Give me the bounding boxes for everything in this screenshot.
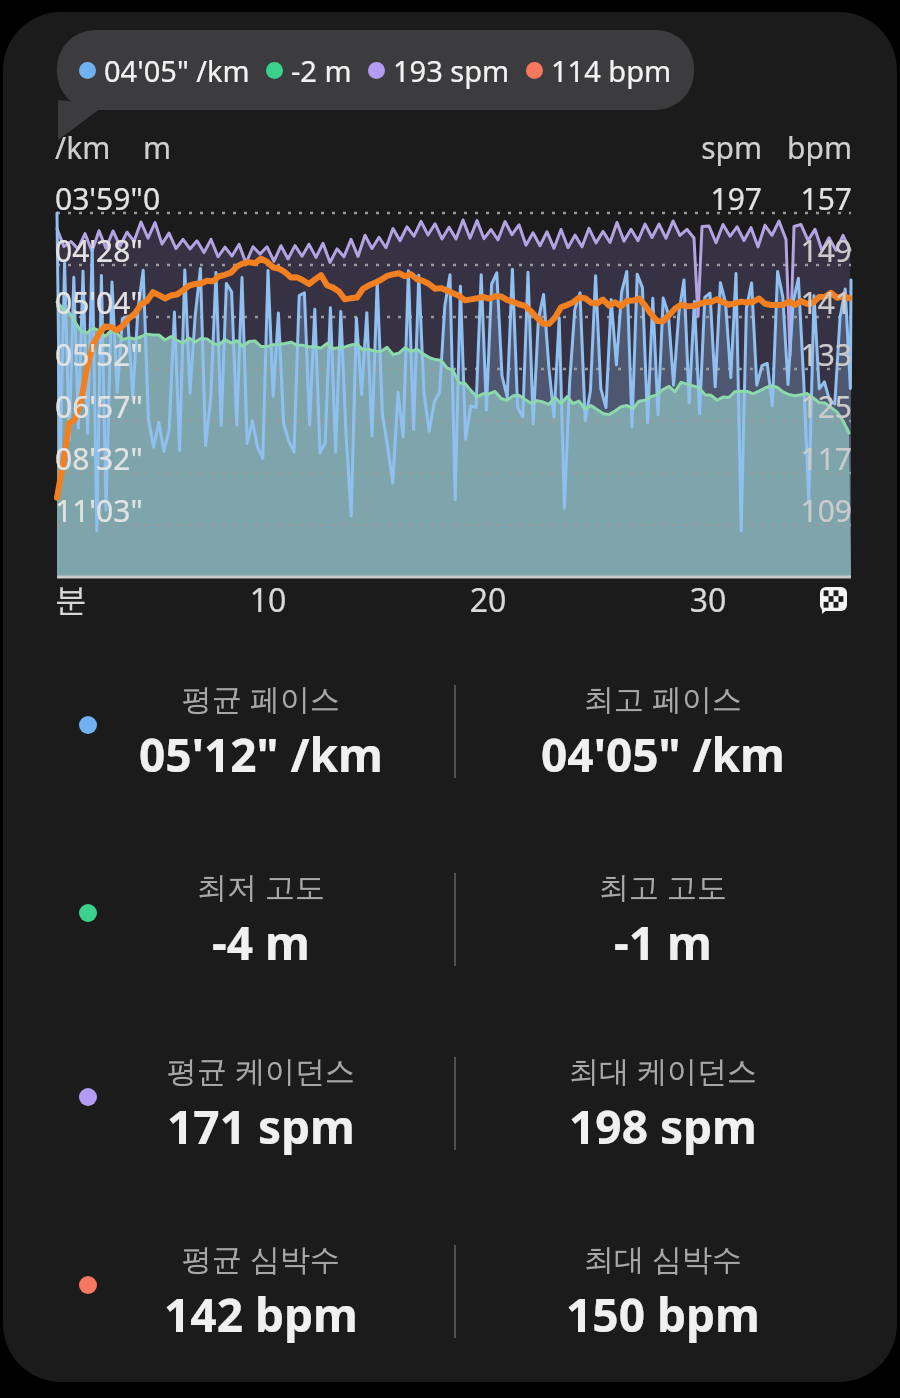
staticText: 133 (752, 334, 852, 375)
staticText: /km (55, 127, 175, 168)
staticText: 06'57" (55, 386, 185, 427)
staticText: 최고 고도 (513, 866, 813, 907)
staticText: 117 (752, 438, 852, 479)
button[interactable]: 평균 심박수 (111, 1228, 411, 1348)
staticText: 최대 심박수 (513, 1238, 813, 1279)
staticText: 0 (143, 178, 203, 219)
staticText: -4 m (111, 911, 411, 971)
staticText: 157 (752, 178, 852, 219)
staticText: 03'59" (55, 178, 175, 219)
staticText: 109 (752, 490, 852, 531)
button[interactable]: 최저 고도 (111, 856, 411, 976)
staticText: 197 (662, 178, 762, 219)
staticText: 08'32" (55, 438, 185, 479)
button[interactable]: 최대 심박수 (513, 1228, 813, 1348)
staticText: bpm (752, 127, 852, 168)
staticText: 11'03" (55, 490, 185, 531)
staticText: 150 bpm (513, 1283, 813, 1343)
staticText: 평균 심박수 (111, 1238, 411, 1279)
staticText: 04'05" /km (104, 51, 250, 90)
button[interactable]: 최고 고도 (513, 856, 813, 976)
staticText: 04'28" (55, 230, 185, 271)
staticText: 114 bpm (551, 51, 672, 90)
button[interactable]: 최대 케이던스 (513, 1040, 813, 1160)
staticText: 30 (668, 578, 748, 622)
staticText: 193 spm (393, 51, 510, 90)
button[interactable]: 최고 페이스 (513, 668, 813, 788)
staticText: 분 (55, 580, 135, 620)
staticText: 20 (448, 578, 528, 622)
staticText: 10 (228, 578, 308, 622)
button[interactable]: 04'05" /km (57, 30, 694, 110)
staticText: m (143, 127, 203, 168)
staticText: 125 (752, 386, 852, 427)
staticText: 142 bpm (111, 1283, 411, 1343)
staticText: 141 (752, 282, 852, 323)
staticText: 05'04" (55, 282, 185, 323)
staticText: 198 spm (513, 1095, 813, 1155)
staticText: 최저 고도 (111, 866, 411, 907)
staticText: 05'52" (55, 334, 185, 375)
button[interactable]: 평균 페이스 (111, 668, 411, 788)
staticText: -1 m (513, 911, 813, 971)
button[interactable]: 평균 케이던스 (111, 1040, 411, 1160)
staticText: 04'05" /km (513, 723, 813, 783)
staticText: 평균 케이던스 (111, 1050, 411, 1091)
staticText: 05'12" /km (111, 723, 411, 783)
staticText: 149 (752, 230, 852, 271)
staticText: spm (662, 127, 762, 168)
staticText: 171 spm (111, 1095, 411, 1155)
staticText: -2 m (291, 51, 352, 90)
staticText: 평균 페이스 (111, 678, 411, 719)
staticText: 최대 케이던스 (513, 1050, 813, 1091)
staticText: 최고 페이스 (513, 678, 813, 719)
